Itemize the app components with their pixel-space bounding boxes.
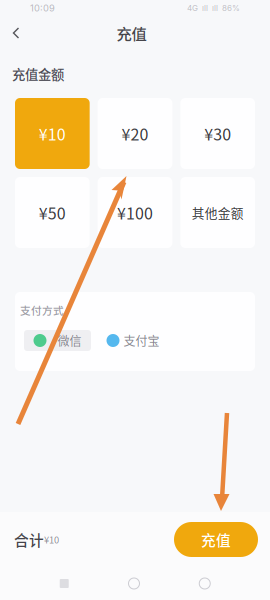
button[interactable]: ¥100	[98, 177, 172, 248]
staticText: ¥10	[44, 533, 59, 546]
staticText: 微信	[57, 332, 81, 349]
button[interactable]: Back	[3, 19, 29, 47]
staticText: ¥30	[204, 122, 231, 145]
button[interactable]: 充值	[174, 522, 258, 557]
staticText: ¥20	[121, 122, 148, 145]
staticText: 4G ıll ıll 86%	[187, 3, 240, 13]
staticText: 支付宝	[123, 332, 159, 349]
staticText: 充值	[116, 22, 146, 44]
staticText: 充值金额	[12, 64, 64, 84]
staticText: 充值	[201, 529, 231, 550]
staticText: ¥50	[39, 201, 66, 224]
button[interactable]: ¥20	[98, 98, 172, 169]
staticText: 合计	[14, 529, 44, 550]
button[interactable]: 其他金额	[180, 177, 255, 248]
button[interactable]: 支付宝	[104, 330, 162, 351]
button[interactable]: ¥50	[15, 177, 90, 248]
button[interactable]: ¥30	[180, 98, 255, 169]
staticText: ¥10	[39, 122, 66, 145]
staticText: 其他金额	[192, 203, 244, 222]
staticText: 10:09	[30, 2, 55, 14]
staticText: 支付方式	[20, 302, 64, 318]
staticText: ¥100	[117, 201, 153, 224]
button[interactable]: 微信	[24, 330, 91, 351]
button[interactable]: ¥10	[15, 98, 90, 169]
